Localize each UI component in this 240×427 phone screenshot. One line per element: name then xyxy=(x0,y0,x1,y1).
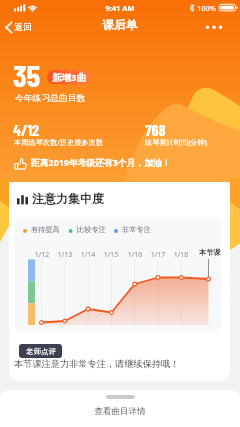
button[interactable] xyxy=(198,18,230,36)
staticText: 768 xyxy=(145,120,166,139)
button[interactable]: 距离2019年考级还有3个月，加油！ xyxy=(12,153,182,175)
staticText: 1/16 xyxy=(126,250,144,260)
button[interactable]: 查看曲目详情 xyxy=(0,390,240,427)
staticText: 1/14 xyxy=(79,250,97,260)
staticText: 1/18 xyxy=(172,250,190,260)
staticText: 练琴累计时间(分钟) xyxy=(145,137,207,147)
staticText: 1/15 xyxy=(102,250,120,260)
staticText: 老师点评 xyxy=(26,347,56,356)
staticText: 课后单 xyxy=(0,18,240,32)
staticText: 1/17 xyxy=(149,250,167,260)
staticText: 1/13 xyxy=(56,250,74,260)
staticText: 新增3曲 xyxy=(52,71,86,84)
staticText: 有待提高 xyxy=(31,225,60,234)
staticText: 100% xyxy=(197,3,217,13)
staticText: 注意力集中度 xyxy=(32,191,104,206)
staticText: 今年练习总曲目数 xyxy=(15,93,86,104)
staticText: 9:41 AM xyxy=(0,3,240,13)
button[interactable]: 本节课 xyxy=(197,245,221,257)
button[interactable]: 新增3曲 xyxy=(47,70,91,84)
staticText: 查看曲目详情 xyxy=(0,406,240,417)
staticText: 4/12 xyxy=(13,120,40,139)
staticText: 1/12 xyxy=(33,250,51,260)
staticText: 本周练琴次数/历史最多次数 xyxy=(14,137,103,147)
staticText: 距离2019年考级还有3个月，加油！ xyxy=(31,157,171,169)
staticText: 本节课 xyxy=(199,248,221,257)
staticText: 35 xyxy=(13,56,41,93)
staticText: 非常专注 xyxy=(122,225,151,234)
staticText: 返回 xyxy=(14,21,32,32)
staticText: 比较专注 xyxy=(77,225,106,234)
button[interactable]: 返回 xyxy=(0,16,64,38)
staticText: 本节课注意力非常专注，请继续保持哦！ xyxy=(14,358,180,370)
